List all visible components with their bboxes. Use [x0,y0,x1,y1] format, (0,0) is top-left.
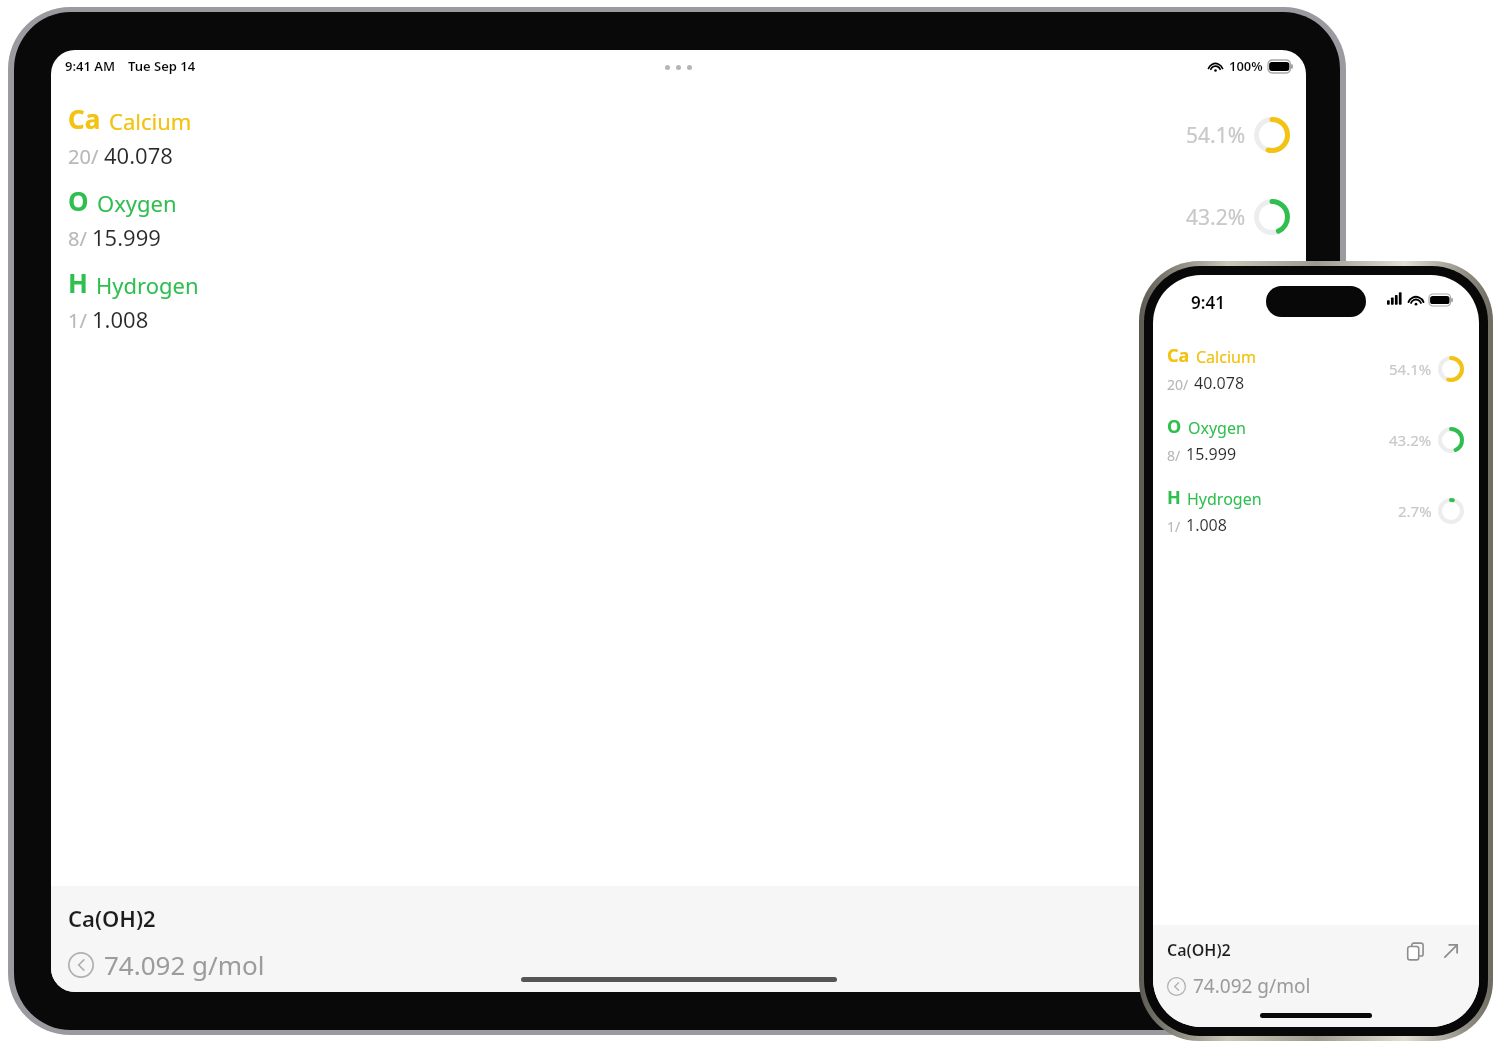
staticText: 9:41 [1191,291,1225,314]
staticText: Calcium [109,106,192,136]
staticText: Ca [1167,343,1190,368]
button[interactable]: 74.092 g/mol [68,947,265,982]
staticText: H [68,265,88,300]
staticText: Hydrogen [96,270,199,300]
staticText: 40.078 [104,140,173,170]
staticText: 1/ [1167,517,1181,536]
staticText: 15.999 [1186,443,1237,465]
button[interactable]: H [1153,475,1479,546]
staticText: H [1167,485,1181,510]
button[interactable]: Ca [51,94,1306,176]
staticText: 8/ [1167,446,1181,465]
staticText: 20/ [1167,375,1189,394]
button[interactable]: Copy [1401,937,1429,965]
staticText: 100% [1229,57,1263,75]
staticText: 74.092 g/mol [104,947,265,982]
staticText: O [1167,414,1182,439]
staticText: 1.008 [1186,514,1227,536]
staticText: 20/ [68,143,99,170]
staticText: 9:41 AM [65,57,116,75]
staticText: Ca(OH)2 [68,903,156,933]
staticText: 1.008 [92,304,149,334]
staticText: Ca(OH)2 [1167,939,1231,961]
staticText: Tue Sep 14 [128,57,196,75]
staticText: 40.078 [1194,372,1245,394]
button[interactable]: 74.092 g/mol [1167,973,1311,999]
staticText: Hydrogen [1187,488,1262,510]
button[interactable]: H [51,258,1306,340]
staticText: 8/ [68,225,87,252]
button[interactable]: O [1153,404,1479,475]
staticText: 54.1% [1186,121,1246,150]
staticText: O [68,183,89,218]
button[interactable]: Ca [1153,333,1479,404]
staticText: Ca [68,101,101,136]
staticText: 43.2% [1389,430,1432,450]
button[interactable]: Share [1437,937,1465,965]
staticText: Calcium [1196,346,1256,368]
staticText: Oxygen [1188,417,1246,439]
staticText: 2.7% [1398,501,1432,521]
button[interactable]: O [51,176,1306,258]
staticText: 74.092 g/mol [1193,973,1311,999]
staticText: 15.999 [92,222,161,252]
staticText: 1/ [68,307,87,334]
staticText: Oxygen [97,188,177,218]
staticText: 43.2% [1186,203,1246,232]
staticText: 54.1% [1389,359,1432,379]
staticText: 2.7% [1198,285,1246,314]
